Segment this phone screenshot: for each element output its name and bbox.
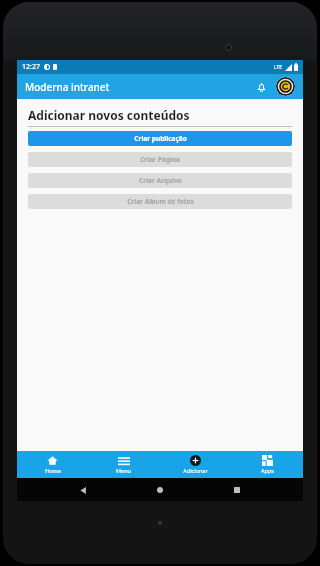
button[interactable]: Criar Página (28, 152, 292, 167)
button[interactable]: Home (149, 479, 171, 501)
staticText: Adicionar novos conteúdos (28, 107, 190, 123)
button[interactable]: Criar publicação (28, 131, 292, 146)
staticText: Criar Arquivo (139, 176, 182, 185)
button[interactable]: Notifications (252, 78, 270, 96)
button[interactable]: Home (17, 451, 88, 478)
staticText: Criar Página (140, 155, 180, 164)
staticText: Criar Álbum de fotos (127, 197, 194, 206)
staticText: 12:27 (22, 62, 40, 72)
staticText: Moderna intranet (25, 80, 110, 94)
staticText: Criar publicação (134, 134, 187, 143)
staticText: Home (45, 467, 61, 474)
button[interactable]: Criar Arquivo (28, 173, 292, 188)
staticText: Menu (116, 467, 131, 474)
staticText: Adicionar (183, 467, 208, 474)
button[interactable]: Menu (88, 451, 159, 478)
button[interactable]: Back (72, 479, 94, 501)
staticText: LTE (274, 64, 283, 71)
button[interactable]: Recent apps (226, 479, 248, 501)
button[interactable]: Adicionar (159, 451, 231, 478)
staticText: Apps (261, 467, 274, 474)
button[interactable]: Apps (231, 451, 303, 478)
button[interactable]: Criar Álbum de fotos (28, 194, 292, 209)
button[interactable]: Profile (276, 77, 295, 96)
